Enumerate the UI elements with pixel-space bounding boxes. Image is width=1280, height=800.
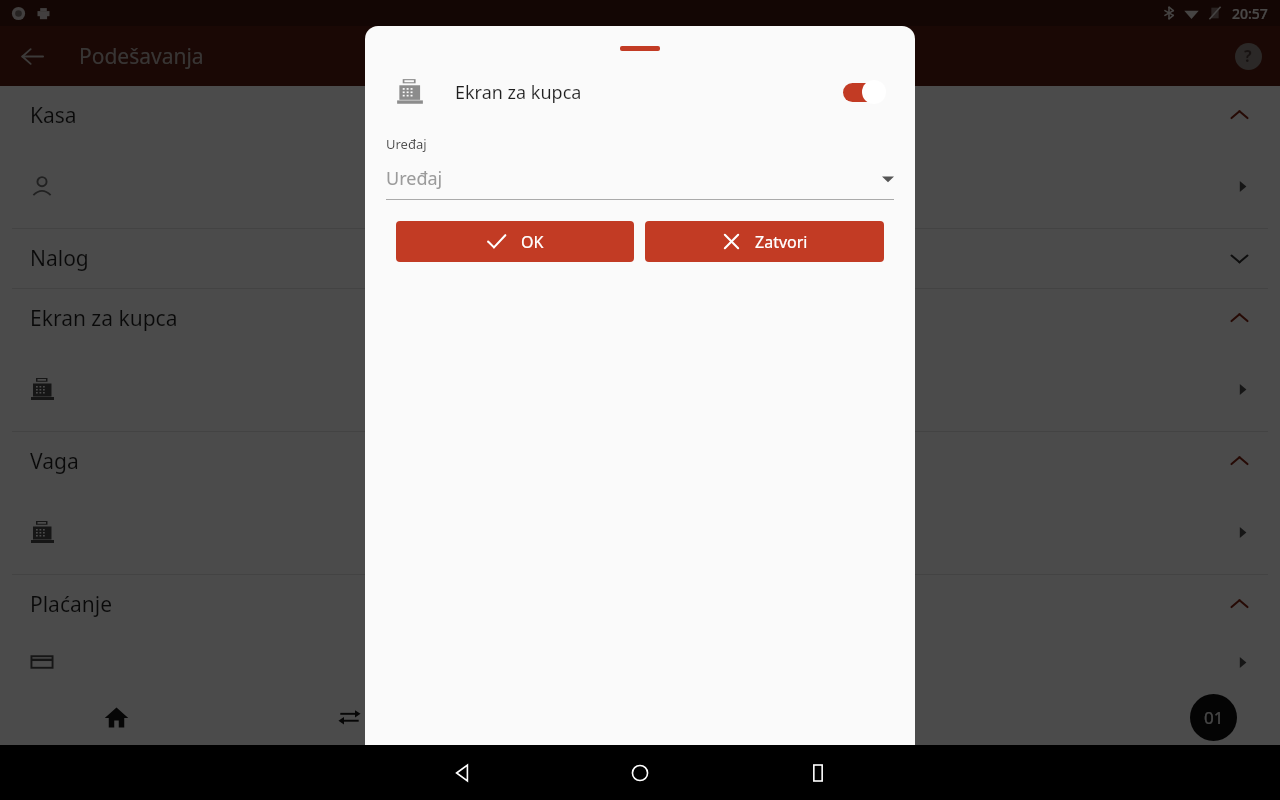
button[interactable]: Kasa [0,86,1280,145]
button[interactable]: 01 [1190,694,1237,741]
button[interactable]: Zatvori [645,221,884,262]
other: Toggle section [1229,105,1250,126]
staticText: Uređaj [386,166,443,191]
staticText: OK [521,231,544,253]
button[interactable]: Ekran za kupca [0,289,1280,348]
button[interactable]: Open [0,491,1280,574]
other: Toggle section [1229,308,1250,329]
other: Open [1235,382,1250,397]
staticText: Ekran za kupca [455,80,582,105]
other: Toggle section [1229,594,1250,615]
button[interactable]: Home [0,690,233,745]
button[interactable]: Recents [791,746,845,800]
button[interactable]: Back [435,746,489,800]
button[interactable]: Help [1226,34,1270,78]
staticText: Nalog [30,244,89,273]
staticText: 01 [1204,706,1224,729]
other: Open [1235,179,1250,194]
other: Open [1235,525,1250,540]
staticText: Uređaj [386,135,427,153]
button[interactable]: Uređaj [386,135,894,200]
other: Toggle section [1229,451,1250,472]
button[interactable]: Nalog [0,229,1280,288]
staticText: Zatvori [755,231,808,253]
staticText: Kasa [30,101,77,130]
staticText: ? [1244,45,1252,67]
button[interactable]: Vaga [0,432,1280,491]
staticText: Ekran za kupca [30,304,178,333]
button[interactable]: Open [0,348,1280,431]
button[interactable]: Back [10,34,54,78]
other: Toggle section [1229,248,1250,269]
staticText: Vaga [30,447,79,476]
button[interactable]: Open [0,145,1280,228]
button[interactable]: Home [613,746,667,800]
button[interactable]: Ekran za kupca toggle [839,75,895,109]
button[interactable]: Plaćanje [0,575,1280,634]
button[interactable]: Open [0,634,1280,690]
staticText: 20:57 [1232,4,1268,23]
other: Open [1235,655,1250,670]
button[interactable]: Transfer [233,690,466,745]
staticText: Plaćanje [30,590,113,619]
staticText: Podešavanja [79,42,204,71]
button[interactable]: OK [396,221,634,262]
